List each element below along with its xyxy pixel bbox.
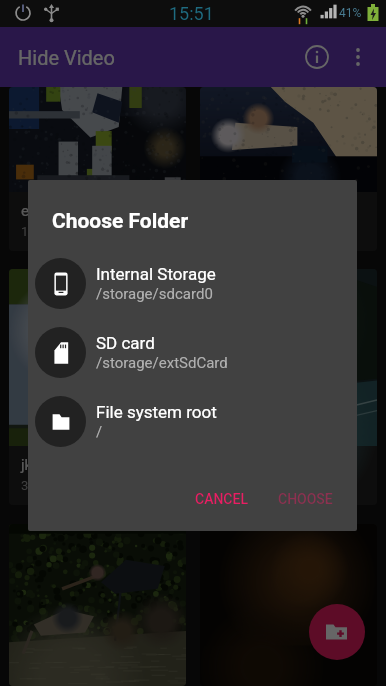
button[interactable]: File system root (28, 396, 357, 447)
button[interactable]: CANCEL (187, 485, 256, 513)
staticText: /storage/sdcard0 (96, 285, 213, 303)
button[interactable]: abc (9, 524, 186, 686)
button[interactable]: pqr (200, 524, 377, 686)
button[interactable]: More options (338, 37, 378, 77)
staticText: 41% (339, 6, 362, 20)
button[interactable]: Info (296, 36, 338, 78)
staticText: 15 videos (21, 224, 77, 239)
staticText: Internal Storage (96, 264, 216, 284)
button[interactable]: CHOOSE (270, 485, 341, 513)
staticText: Choose Folder (52, 209, 189, 234)
button[interactable]: jkl (9, 269, 186, 505)
button[interactable]: Add folder (309, 604, 365, 660)
staticText: SD card (96, 333, 155, 353)
button[interactable]: SD card (28, 327, 357, 378)
staticText: 3 videos (21, 478, 70, 493)
staticText: esp (21, 202, 46, 220)
button[interactable]: Internal Storage (28, 258, 357, 309)
staticText: File system root (96, 402, 217, 422)
staticText: CHOOSE (278, 491, 333, 507)
staticText: 15:51 (169, 3, 214, 24)
button[interactable]: mno (200, 269, 377, 505)
button[interactable]: esp (9, 87, 186, 251)
button[interactable]: xyz (200, 87, 377, 251)
staticText: / (96, 423, 103, 441)
staticText: jkl (21, 456, 36, 474)
staticText: /storage/extSdCard (96, 354, 228, 372)
staticText: CANCEL (195, 491, 248, 507)
staticText: Hide Video (18, 46, 115, 69)
